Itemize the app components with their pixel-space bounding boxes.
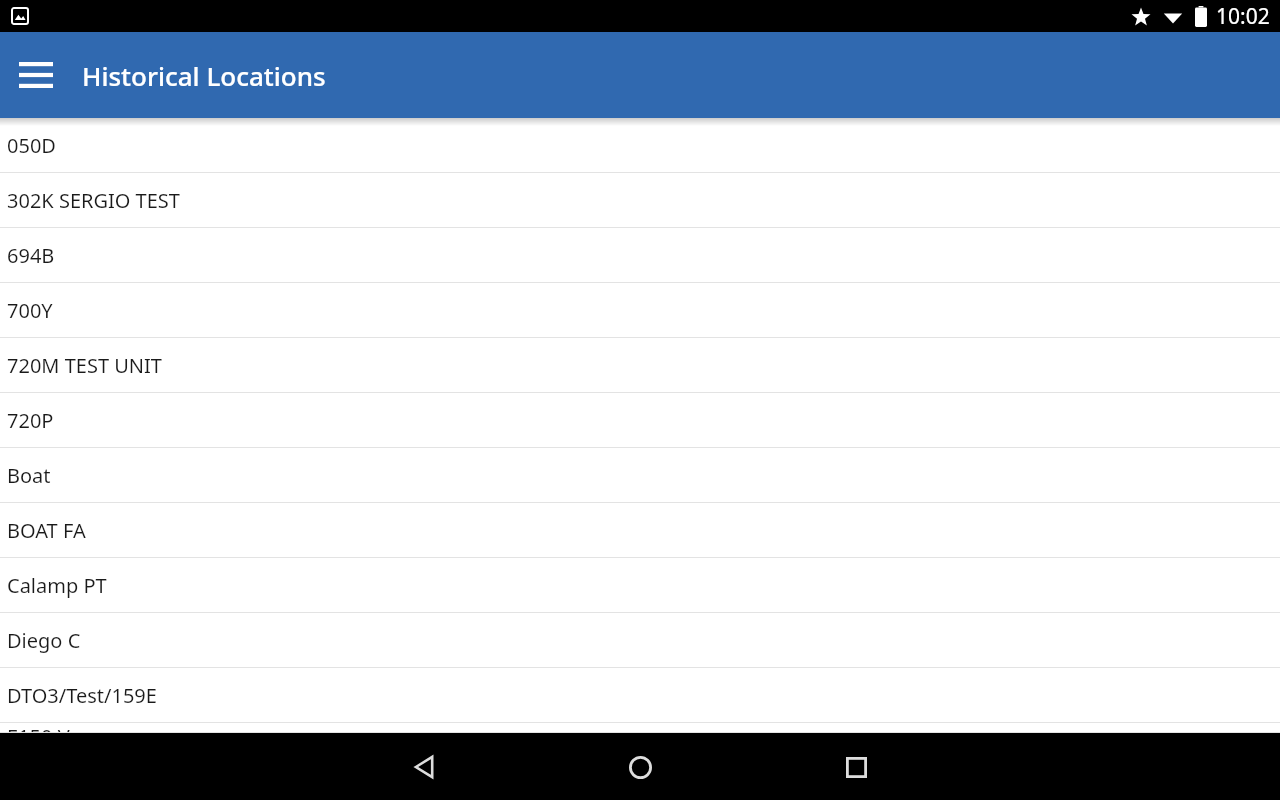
staticText: 694B <box>7 242 55 269</box>
staticText: 720M TEST UNIT <box>7 352 162 379</box>
staticText: 050D <box>7 132 56 159</box>
button[interactable]: Open navigation drawer <box>10 49 62 101</box>
button[interactable]: Calamp PT <box>0 558 1280 613</box>
button[interactable]: BOAT FA <box>0 503 1280 558</box>
staticText: 10:02 <box>1216 2 1270 31</box>
staticText: Historical Locations <box>82 58 326 93</box>
staticText: Boat <box>7 462 51 489</box>
staticText: Diego C <box>7 627 81 654</box>
button[interactable]: DTO3/Test/159E <box>0 668 1280 723</box>
button[interactable]: Back <box>397 739 453 795</box>
button[interactable]: 720M TEST UNIT <box>0 338 1280 393</box>
staticText: 720P <box>7 407 54 434</box>
button[interactable]: Recent apps <box>828 739 884 795</box>
staticText: DTO3/Test/159E <box>7 682 157 709</box>
button[interactable]: Boat <box>0 448 1280 503</box>
button[interactable]: Home <box>612 739 668 795</box>
button[interactable]: 050D <box>0 118 1280 173</box>
button[interactable]: Diego C <box>0 613 1280 668</box>
button[interactable]: 700Y <box>0 283 1280 338</box>
staticText: 302K SERGIO TEST <box>7 187 180 214</box>
staticText: BOAT FA <box>7 517 86 544</box>
button[interactable]: 720P <box>0 393 1280 448</box>
staticText: Calamp PT <box>7 572 107 599</box>
staticText: E150 Van <box>7 723 93 732</box>
staticText: 700Y <box>7 297 53 324</box>
button[interactable]: 302K SERGIO TEST <box>0 173 1280 228</box>
button[interactable]: E150 Van <box>0 723 1280 733</box>
button[interactable]: 694B <box>0 228 1280 283</box>
